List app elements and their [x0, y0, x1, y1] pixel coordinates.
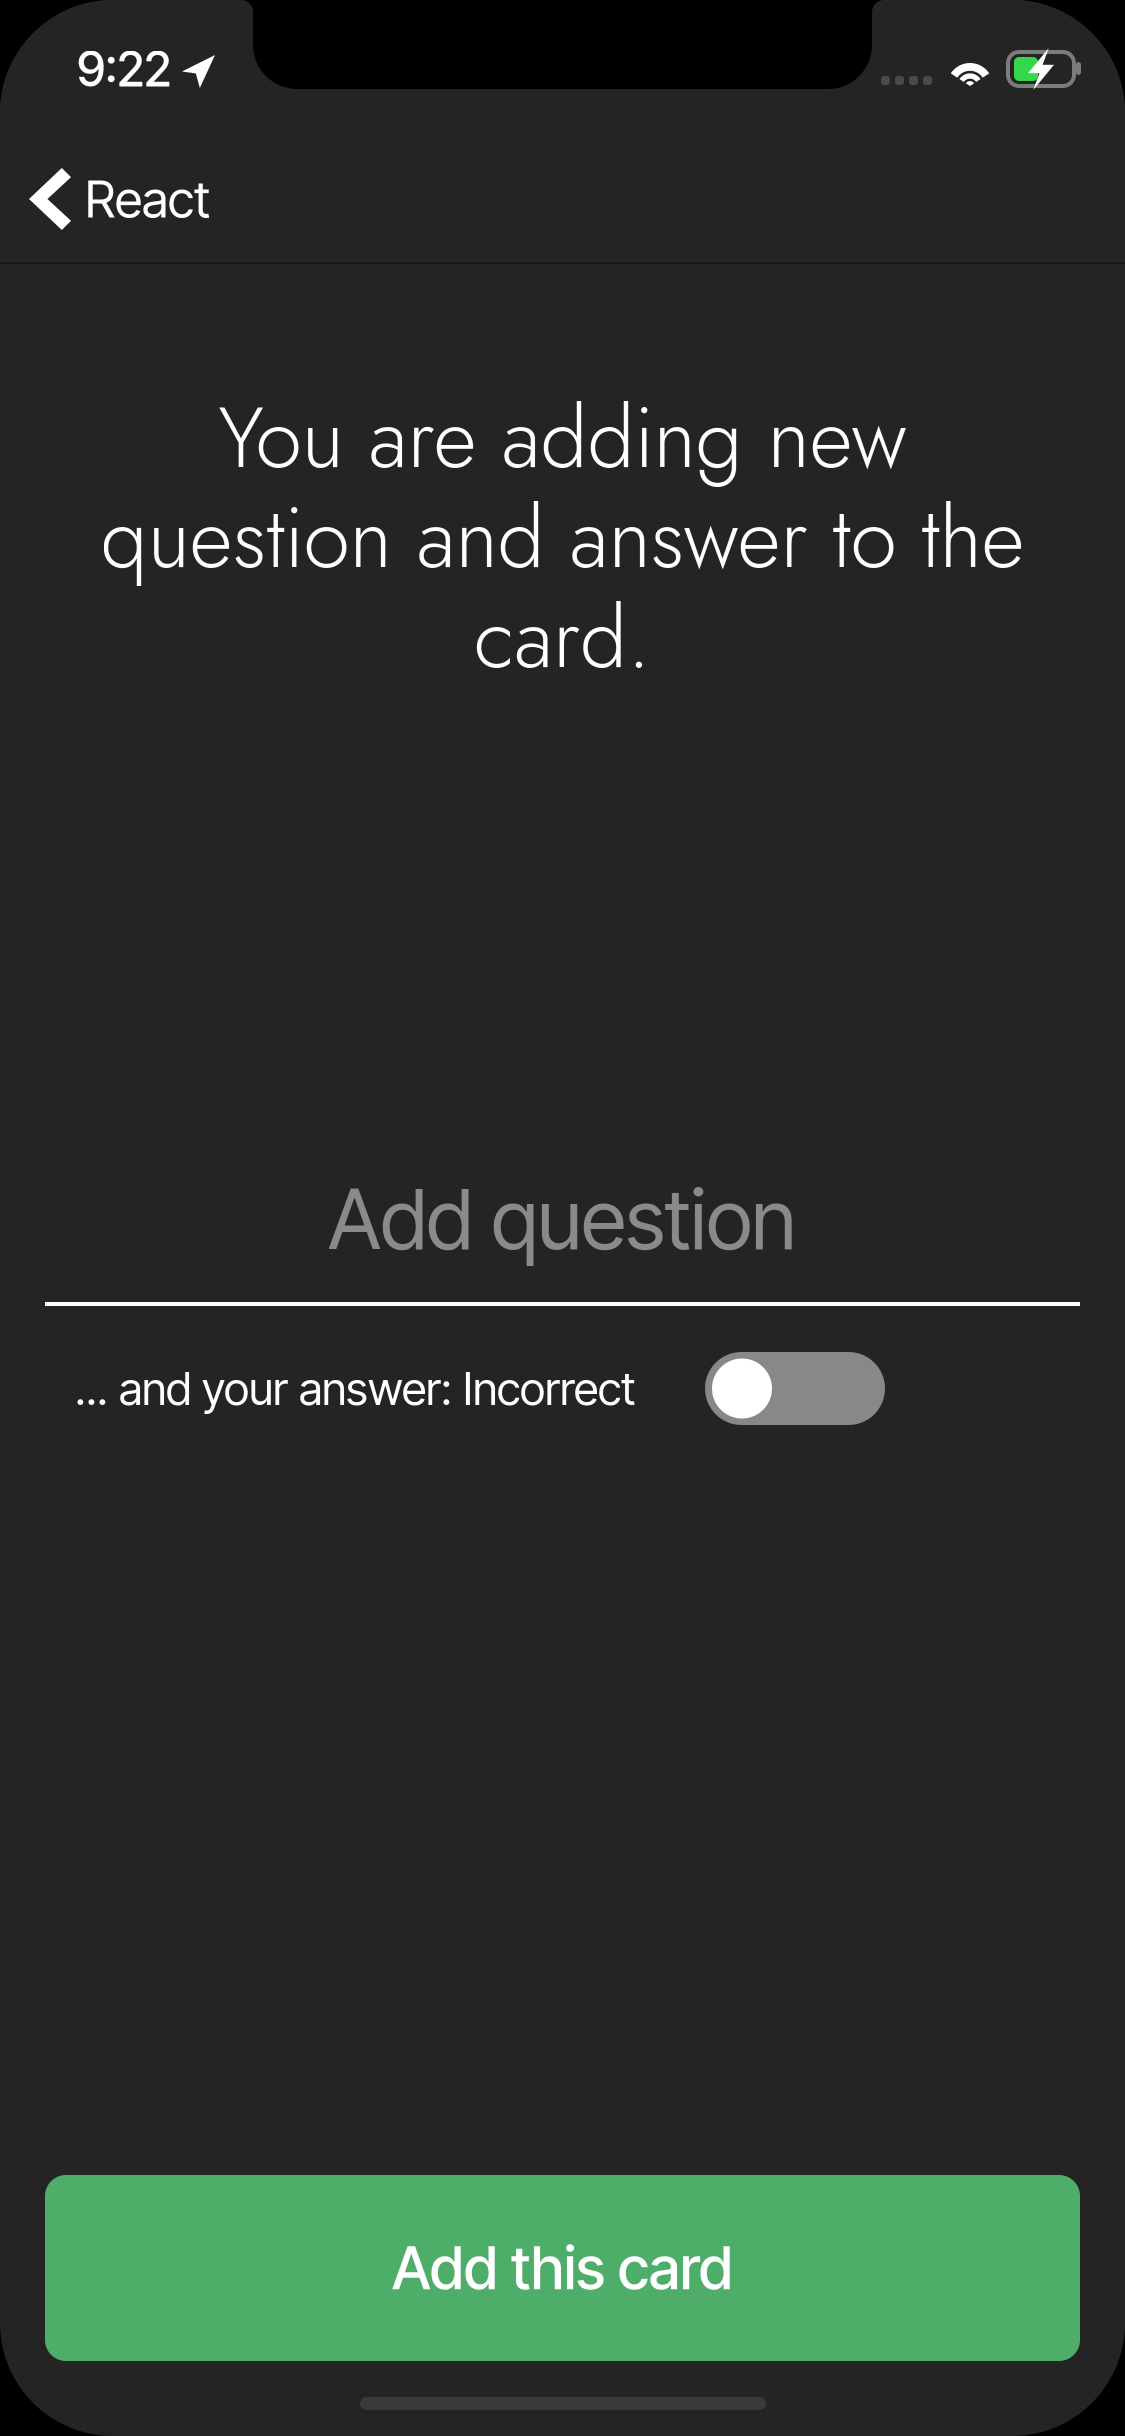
staticText: You are adding new — [218, 377, 906, 498]
staticText: question and answer to the — [100, 477, 1024, 598]
staticText: Add question — [328, 1169, 796, 1269]
staticText: 9:22 — [77, 40, 171, 98]
button[interactable]: React — [0, 133, 420, 265]
staticText: ... and your answer: Incorrect — [75, 1361, 635, 1416]
staticText: Add this card — [392, 2232, 733, 2303]
staticText: React — [85, 168, 210, 230]
staticText: card. — [474, 577, 651, 698]
button[interactable]: Add question — [45, 1157, 1080, 1327]
button[interactable]: Answer is correct — [705, 1352, 885, 1425]
button[interactable]: Add this card — [45, 2175, 1080, 2361]
